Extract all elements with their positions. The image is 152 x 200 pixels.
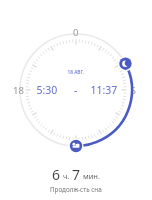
button[interactable]: Sleep summary: 5:30 to 11:37, 6 h 7 min	[0, 0, 152, 200]
